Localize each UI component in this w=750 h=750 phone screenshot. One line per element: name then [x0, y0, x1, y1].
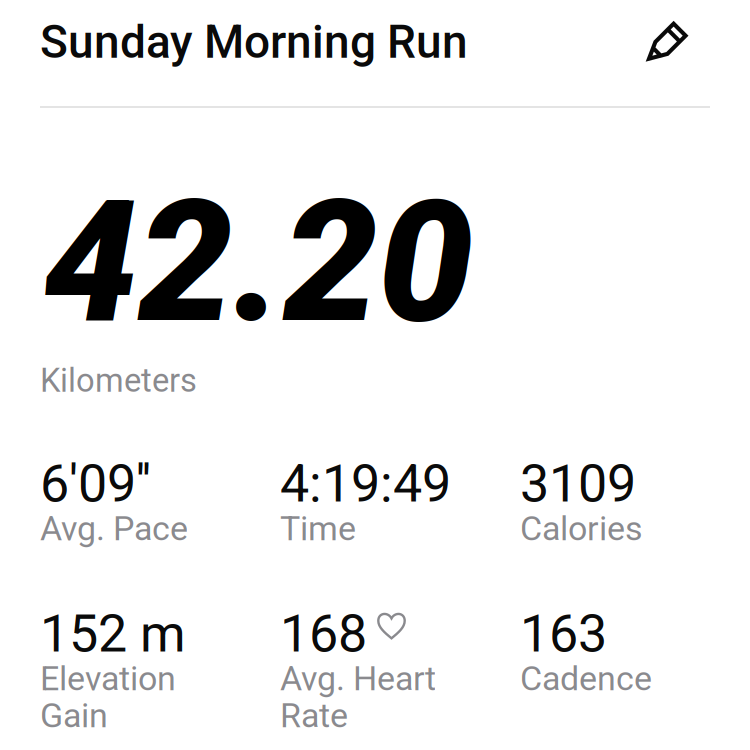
staticText: 168	[280, 603, 367, 664]
button[interactable]: Edit workout	[647, 14, 710, 70]
staticText: Calories	[520, 509, 643, 548]
staticText: 3109	[520, 453, 636, 514]
staticText: 6'09''	[40, 453, 151, 514]
staticText: Cadence	[520, 659, 652, 698]
staticText: Time	[280, 509, 356, 548]
staticText: Avg. Pace	[40, 509, 188, 548]
staticText: Kilometers	[40, 361, 197, 400]
staticText: Elevation	[40, 659, 176, 698]
staticText: 152 m	[40, 603, 186, 664]
staticText: Sunday Morning Run	[40, 15, 468, 69]
staticText: Avg. Heart	[280, 659, 436, 698]
staticText: 42.20	[43, 163, 473, 361]
staticText: 163	[520, 603, 607, 664]
staticText: Rate	[280, 696, 348, 735]
staticText: 4:19:49	[280, 453, 451, 514]
staticText: Gain	[40, 696, 108, 735]
